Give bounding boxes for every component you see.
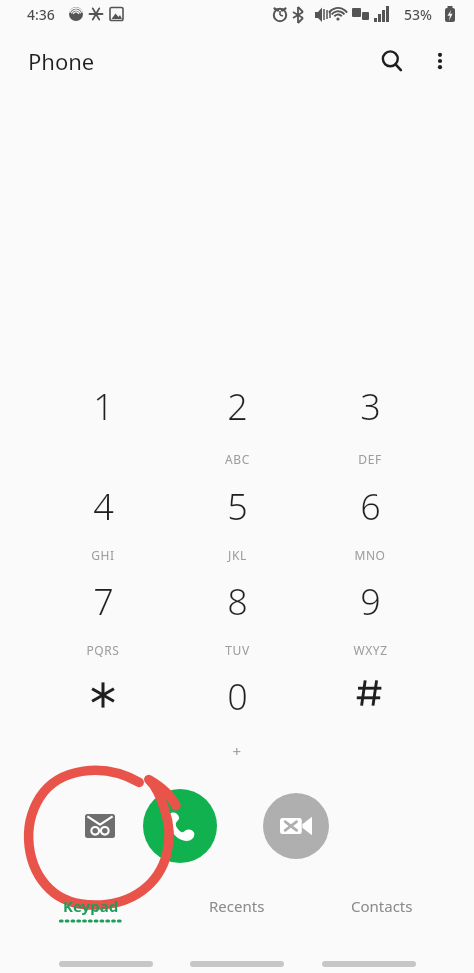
staticText: TUV — [225, 642, 250, 658]
button[interactable]: 8 — [181, 563, 293, 647]
button[interactable]: More options — [418, 39, 462, 83]
button[interactable]: 6 — [314, 468, 426, 552]
button[interactable]: Video call unavailable — [263, 793, 329, 859]
button[interactable]: 9 — [314, 563, 426, 647]
staticText: 0 — [227, 672, 248, 721]
staticText: 4 — [93, 482, 114, 531]
button[interactable]: 7 — [47, 563, 159, 647]
staticText: 2 — [227, 382, 248, 431]
staticText: Keypad — [63, 896, 119, 916]
button[interactable]: 3 — [314, 368, 426, 452]
staticText: GHI — [91, 547, 115, 563]
staticText: PQRS — [86, 642, 120, 658]
button[interactable]: 5 — [181, 468, 293, 552]
staticText: 1 — [93, 382, 114, 431]
staticText: Contacts — [351, 896, 413, 916]
button[interactable] — [314, 658, 426, 742]
staticText: DEF — [358, 451, 382, 467]
staticText: 4:36 — [27, 5, 55, 24]
staticText: WXYZ — [353, 642, 388, 658]
button[interactable]: Recents — [165, 896, 309, 942]
button[interactable]: Voicemail — [72, 798, 128, 854]
staticText: Recents — [209, 896, 265, 916]
button[interactable]: Keypad — [19, 896, 163, 942]
button[interactable] — [47, 658, 159, 742]
staticText: ABC — [225, 451, 250, 467]
staticText: 5 — [227, 482, 248, 531]
staticText: + — [232, 741, 242, 761]
staticText: 3 — [360, 382, 381, 431]
staticText: 8 — [227, 577, 248, 626]
button[interactable]: 0 — [181, 658, 293, 742]
button[interactable]: 1 — [47, 368, 159, 452]
button[interactable]: Search — [370, 39, 414, 83]
staticText: 9 — [360, 577, 381, 626]
button[interactable]: Contacts — [310, 896, 454, 942]
staticText: JKL — [228, 547, 247, 563]
button[interactable]: Call — [143, 789, 217, 863]
staticText: MNO — [354, 547, 386, 563]
staticText: 53% — [404, 5, 432, 24]
button[interactable]: 4 — [47, 468, 159, 552]
staticText: 7 — [93, 577, 114, 626]
button[interactable]: 2 — [181, 368, 293, 452]
staticText: 6 — [360, 482, 381, 531]
staticText: Phone — [28, 46, 95, 76]
